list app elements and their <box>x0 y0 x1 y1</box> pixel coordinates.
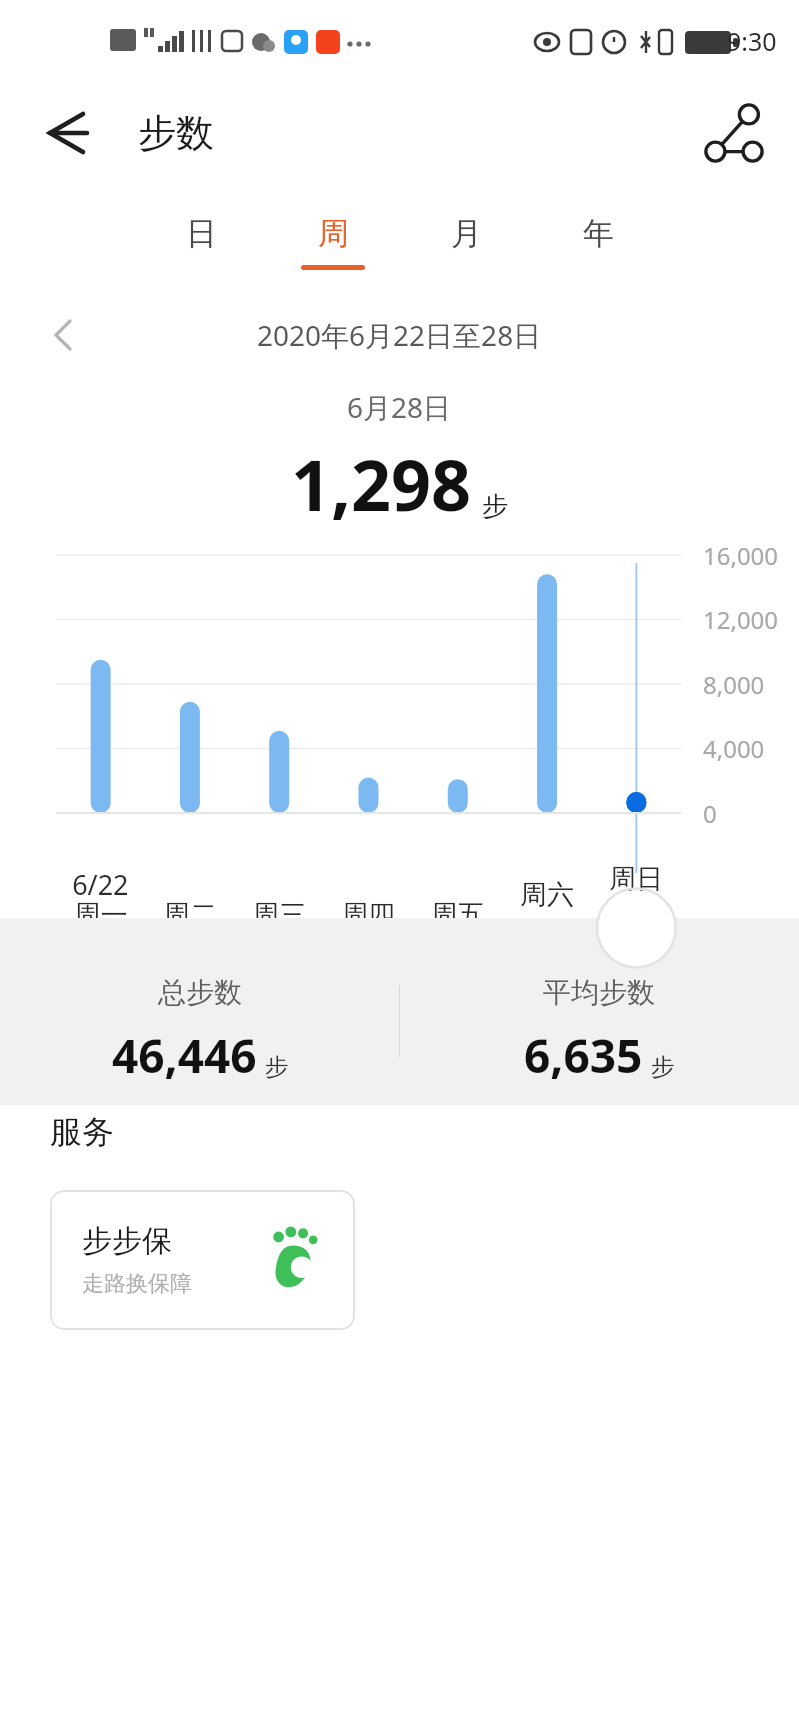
button[interactable]: Back <box>38 104 96 162</box>
staticText: 服务 <box>50 1112 114 1152</box>
staticText: 年 <box>583 214 614 253</box>
staticText: 6月28日 <box>347 388 452 426</box>
staticText: 9:30 <box>727 24 777 58</box>
button[interactable]: Previous week <box>38 310 88 360</box>
staticText: 平均步数 <box>543 975 655 1010</box>
staticText: 月 <box>451 214 482 253</box>
button[interactable]: 周 <box>300 214 366 270</box>
staticText: 6,635 <box>524 1024 643 1087</box>
staticText: 步步保 <box>82 1222 172 1260</box>
staticText: 日 <box>186 214 217 253</box>
staticText: 步 <box>482 490 508 523</box>
button[interactable]: 月 <box>433 214 499 270</box>
staticText: 2020年6月22日至28日 <box>257 316 542 354</box>
button[interactable]: 年 <box>565 214 631 270</box>
button[interactable]: 步步保 <box>50 1190 355 1330</box>
staticText: 46,446 <box>112 1024 257 1087</box>
button[interactable]: 日 <box>168 214 234 270</box>
staticText: 步 <box>265 1052 289 1082</box>
button[interactable]: Share <box>703 102 765 164</box>
staticText: 步数 <box>138 109 214 157</box>
staticText: 总步数 <box>158 975 242 1010</box>
staticText: 1,298 <box>291 436 472 531</box>
staticText: 周 <box>318 214 349 253</box>
staticText: 步 <box>651 1052 675 1082</box>
staticText: 走路换保障 <box>82 1270 192 1298</box>
